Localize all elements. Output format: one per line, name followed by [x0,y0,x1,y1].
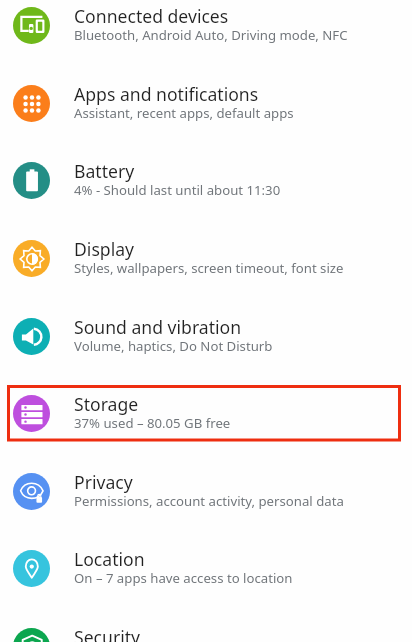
button[interactable]: Privacy [0,453,412,531]
staticText: Apps and notifications [74,82,259,106]
button[interactable]: Security [0,608,412,642]
staticText: Sound and vibration [74,315,242,339]
staticText: Location [74,547,145,571]
button[interactable]: Storage [0,375,412,453]
button[interactable]: Connected devices [0,0,412,65]
staticText: Assistant, recent apps, default apps [74,104,294,122]
staticText: Bluetooth, Android Auto, Driving mode, N… [74,26,348,44]
staticText: Security [74,625,141,642]
button[interactable]: Sound and vibration [0,298,412,376]
staticText: Styles, wallpapers, screen timeout, font… [74,259,344,277]
staticText: Connected devices [74,4,229,28]
staticText: Privacy [74,470,133,494]
staticText: 37% used – 80.05 GB free [74,414,231,432]
button[interactable]: Apps and notifications [0,65,412,143]
button[interactable]: Battery [0,142,412,220]
staticText: On – 7 apps have access to location [74,569,293,587]
staticText: Display [74,237,135,261]
staticText: Permissions, account activity, personal … [74,492,344,510]
staticText: Storage [74,392,139,416]
staticText: Battery [74,159,135,183]
button[interactable]: Display [0,220,412,298]
staticText: Volume, haptics, Do Not Disturb [74,337,273,355]
button[interactable]: Location [0,530,412,608]
staticText: 4% - Should last until about 11:30 [74,181,281,199]
